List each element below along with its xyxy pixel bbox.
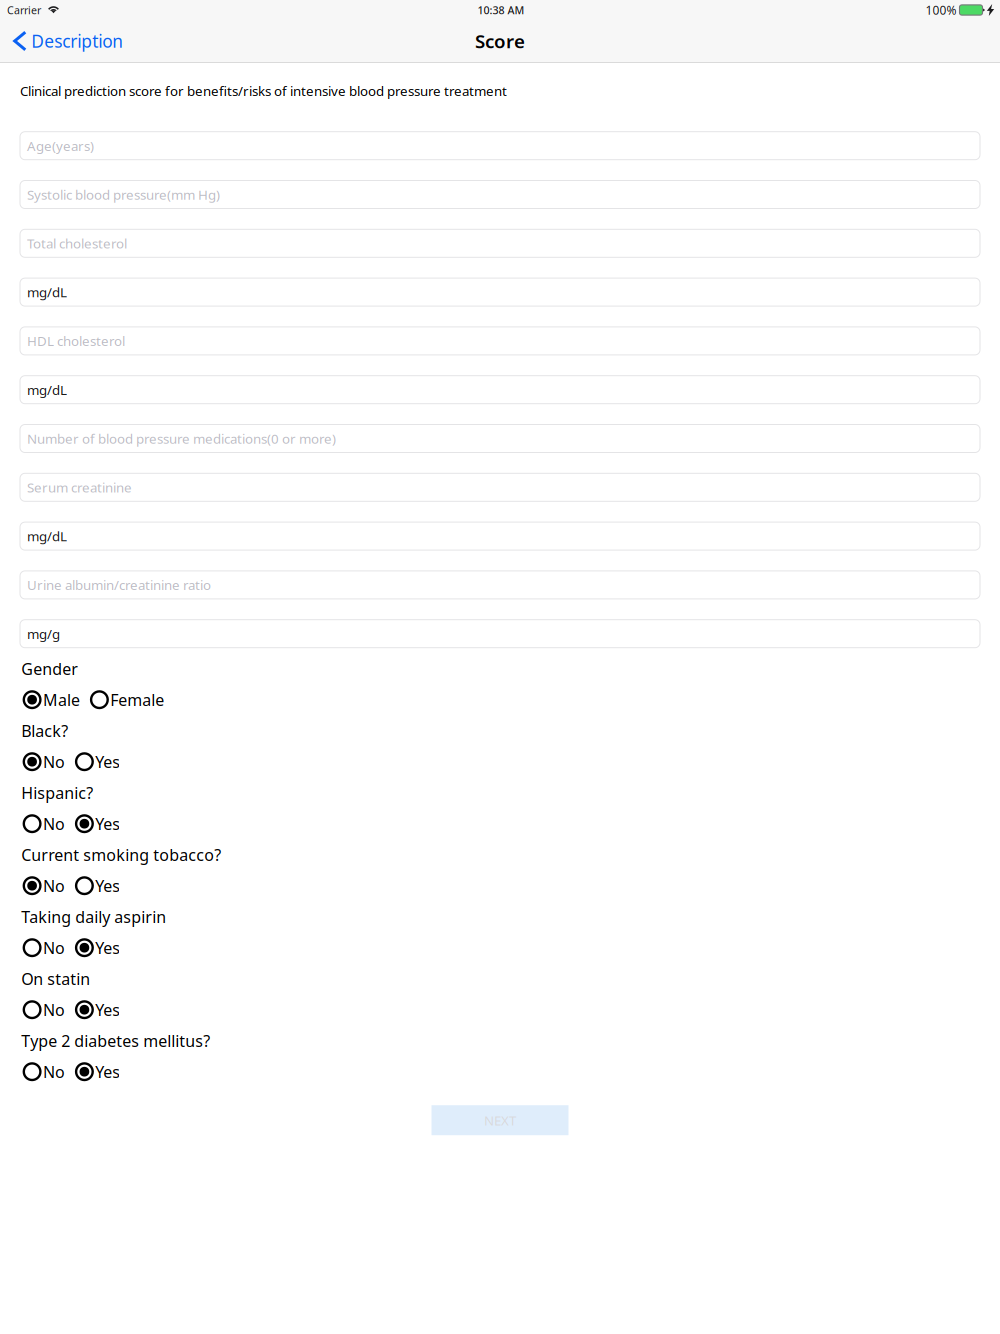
- staticText: Male: [43, 689, 80, 710]
- staticText: Gender: [21, 658, 78, 679]
- button[interactable]: Yes: [73, 999, 120, 1020]
- staticText: Yes: [95, 999, 120, 1020]
- staticText: mg/dL: [27, 283, 67, 301]
- button[interactable]: No: [21, 1061, 65, 1082]
- staticText: Age(years): [27, 137, 94, 155]
- staticText: Total cholesterol: [27, 234, 127, 252]
- button[interactable]: Yes: [73, 751, 120, 772]
- button[interactable]: Female: [88, 689, 164, 710]
- button[interactable]: No: [21, 937, 65, 958]
- staticText: No: [43, 813, 65, 834]
- staticText: mg/dL: [27, 527, 67, 545]
- staticText: No: [43, 875, 65, 896]
- staticText: No: [43, 999, 65, 1020]
- staticText: Taking daily aspirin: [21, 906, 166, 927]
- button[interactable]: Male: [21, 689, 80, 710]
- staticText: No: [43, 937, 65, 958]
- staticText: Black?: [21, 720, 68, 741]
- staticText: 10:38 AM: [477, 3, 524, 17]
- staticText: Yes: [95, 937, 120, 958]
- staticText: mg/dL: [27, 381, 67, 399]
- button[interactable]: No: [21, 813, 65, 834]
- button[interactable]: No: [21, 875, 65, 896]
- button[interactable]: NEXT: [431, 1105, 568, 1135]
- staticText: Yes: [95, 875, 120, 896]
- staticText: Hispanic?: [21, 782, 93, 803]
- staticText: Yes: [95, 813, 120, 834]
- button[interactable]: Yes: [73, 875, 120, 896]
- button[interactable]: No: [21, 999, 65, 1020]
- staticText: Yes: [95, 1061, 120, 1082]
- button[interactable]: Yes: [73, 813, 120, 834]
- button[interactable]: Yes: [73, 1061, 120, 1082]
- staticText: Current smoking tobacco?: [21, 844, 221, 865]
- staticText: Clinical prediction score for benefits/r…: [20, 82, 507, 100]
- button[interactable]: No: [21, 751, 65, 772]
- staticText: No: [43, 751, 65, 772]
- staticText: Carrier: [7, 3, 41, 17]
- staticText: Systolic blood pressure(mm Hg): [27, 186, 220, 203]
- staticText: Yes: [95, 751, 120, 772]
- staticText: Number of blood pressure medications(0 o…: [27, 430, 336, 447]
- staticText: Type 2 diabetes mellitus?: [21, 1030, 210, 1051]
- staticText: Description: [31, 29, 123, 52]
- button[interactable]: Yes: [73, 937, 120, 958]
- staticText: No: [43, 1061, 65, 1082]
- staticText: HDL cholesterol: [27, 332, 125, 350]
- staticText: 100%: [925, 2, 956, 18]
- staticText: Score: [475, 29, 525, 53]
- button[interactable]: Description: [0, 24, 131, 57]
- staticText: Female: [110, 689, 164, 710]
- staticText: NEXT: [484, 1111, 516, 1129]
- staticText: On statin: [21, 968, 90, 989]
- staticText: Serum creatinine: [27, 478, 132, 496]
- staticText: Urine albumin/creatinine ratio: [27, 576, 211, 594]
- staticText: mg/g: [27, 625, 60, 643]
